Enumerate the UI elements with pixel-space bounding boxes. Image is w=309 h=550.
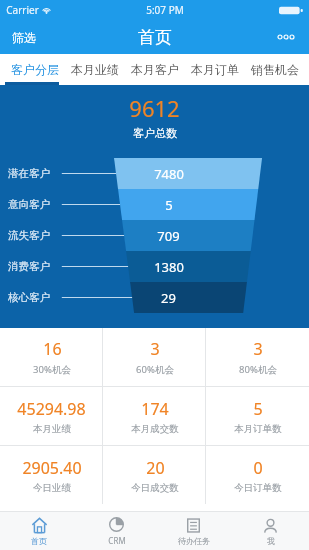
staticText: 客户总数 bbox=[133, 126, 177, 140]
staticText: 80%机会 bbox=[239, 363, 277, 376]
staticText: 本月业绩 bbox=[33, 423, 71, 435]
button[interactable]: 3 bbox=[103, 328, 206, 386]
staticText: 销售机会 bbox=[251, 62, 299, 77]
staticText: 709 bbox=[157, 227, 180, 245]
staticText: 我 bbox=[267, 536, 275, 546]
staticText: 5 bbox=[165, 196, 173, 214]
staticText: Carrier bbox=[6, 3, 39, 17]
button[interactable]: 3 bbox=[206, 328, 309, 386]
staticText: 9612 bbox=[129, 93, 180, 123]
button[interactable]: 45294.98 bbox=[0, 387, 103, 445]
staticText: 潜在客户 bbox=[8, 167, 50, 180]
button[interactable]: More options bbox=[271, 28, 301, 46]
staticText: 本月客户 bbox=[131, 62, 179, 77]
staticText: 待办任务 bbox=[178, 536, 210, 546]
staticText: 本月业绩 bbox=[71, 62, 119, 77]
button[interactable]: 20 bbox=[103, 446, 206, 504]
button[interactable]: 筛选 bbox=[8, 26, 40, 49]
staticText: 意向客户 bbox=[8, 198, 50, 211]
button[interactable]: 本月业绩 bbox=[65, 54, 125, 85]
staticText: 今日业绩 bbox=[33, 482, 71, 494]
staticText: 29 bbox=[161, 289, 176, 307]
button[interactable]: 客户分层 bbox=[5, 54, 65, 85]
staticText: 174 bbox=[141, 398, 169, 420]
staticText: CRM bbox=[108, 535, 126, 546]
button[interactable]: 销售机会 bbox=[245, 54, 305, 85]
button[interactable]: 5 bbox=[206, 387, 309, 445]
staticText: 客户分层 bbox=[11, 62, 59, 77]
staticText: 1380 bbox=[154, 258, 184, 276]
staticText: 流失客户 bbox=[8, 229, 50, 242]
staticText: 消费客户 bbox=[8, 260, 50, 273]
button[interactable]: 0 bbox=[206, 446, 309, 504]
button[interactable]: CRM bbox=[78, 512, 155, 550]
staticText: 首页 bbox=[138, 27, 172, 48]
staticText: 5:07 PM bbox=[146, 3, 184, 17]
button[interactable]: 2905.40 bbox=[0, 446, 103, 504]
staticText: 16 bbox=[43, 338, 62, 360]
staticText: 7480 bbox=[154, 165, 184, 183]
staticText: 0 bbox=[253, 457, 263, 479]
staticText: 20 bbox=[146, 457, 165, 479]
staticText: 本月订单 bbox=[191, 62, 239, 77]
staticText: 今日订单数 bbox=[234, 482, 282, 494]
button[interactable]: 首页 bbox=[0, 512, 78, 550]
staticText: 本月成交数 bbox=[131, 423, 179, 435]
staticText: 60%机会 bbox=[136, 363, 174, 376]
staticText: 筛选 bbox=[12, 30, 36, 45]
staticText: 30%机会 bbox=[33, 363, 71, 376]
button[interactable]: 174 bbox=[103, 387, 206, 445]
staticText: 首页 bbox=[31, 536, 47, 546]
button[interactable]: 待办任务 bbox=[155, 512, 232, 550]
staticText: 5 bbox=[253, 398, 263, 420]
staticText: 2905.40 bbox=[22, 457, 82, 479]
button[interactable]: 本月客户 bbox=[125, 54, 185, 85]
button[interactable]: 本月订单 bbox=[185, 54, 245, 85]
staticText: 3 bbox=[253, 338, 263, 360]
staticText: 45294.98 bbox=[17, 398, 86, 420]
button[interactable]: 16 bbox=[0, 328, 103, 386]
staticText: 今日成交数 bbox=[131, 482, 179, 494]
button[interactable]: 我 bbox=[232, 512, 309, 550]
staticText: 核心客户 bbox=[8, 291, 50, 304]
staticText: 3 bbox=[150, 338, 160, 360]
staticText: 本月订单数 bbox=[234, 423, 282, 435]
